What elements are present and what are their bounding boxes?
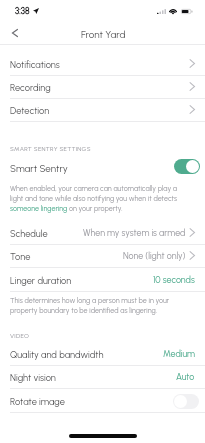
- staticText: Notifications: [10, 59, 60, 70]
- staticText: Quality and bandwidth: [10, 349, 104, 360]
- staticText: SMART SENTRY SETTINGS: [10, 145, 91, 153]
- staticText: Schedule: [10, 228, 48, 239]
- button[interactable]: Rotate image: [0, 390, 205, 413]
- button[interactable]: Linger duration: [0, 269, 205, 292]
- staticText: Detection: [10, 105, 50, 116]
- staticText: Medium: [163, 349, 195, 360]
- staticText: When enabled, your camera can automatica…: [10, 184, 186, 213]
- staticText: Linger duration: [10, 275, 72, 286]
- staticText: 10 seconds: [153, 275, 195, 286]
- staticText: Recording: [10, 82, 51, 93]
- button[interactable]: Smart Sentry: [10, 157, 199, 176]
- staticText: Tone: [10, 251, 31, 262]
- button[interactable]: Notifications: [0, 53, 205, 76]
- button[interactable]: Detection: [0, 99, 205, 122]
- button[interactable]: Back: [2, 22, 28, 44]
- staticText: Front Yard: [81, 29, 126, 41]
- button[interactable]: Recording: [0, 76, 205, 99]
- button[interactable]: Tone: [0, 245, 205, 268]
- button[interactable]: Night vision: [0, 366, 205, 389]
- staticText: When my system is armed: [83, 228, 186, 239]
- button[interactable]: Quality and bandwidth: [0, 343, 205, 366]
- staticText: Auto: [176, 372, 195, 383]
- staticText: Night vision: [10, 372, 56, 383]
- staticText: 3:38: [15, 6, 30, 16]
- staticText: VIDEO: [10, 332, 30, 340]
- staticText: This determines how long a person must b…: [10, 296, 186, 315]
- staticText: None (light only): [123, 251, 186, 262]
- staticText: Smart Sentry: [10, 163, 68, 175]
- button[interactable]: Schedule: [0, 222, 205, 245]
- staticText: Rotate image: [10, 396, 65, 407]
